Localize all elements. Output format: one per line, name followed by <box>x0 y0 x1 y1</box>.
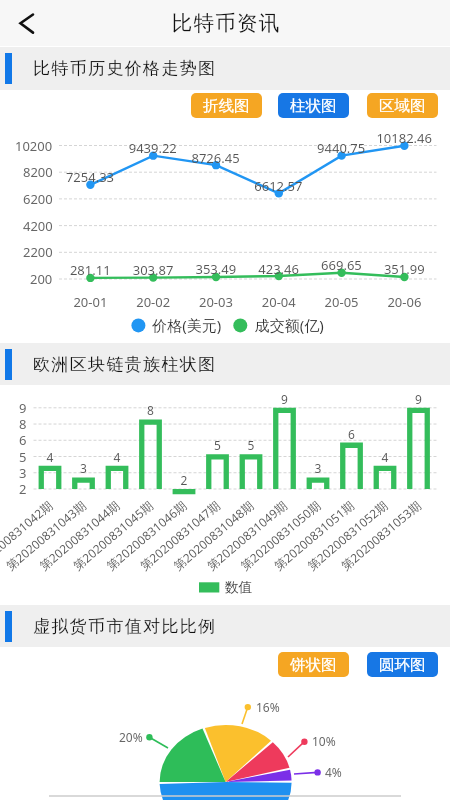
staticText: 区域图 <box>379 96 426 116</box>
staticText: 比特币资讯 <box>171 10 280 36</box>
button[interactable]: 区域图 <box>367 93 438 118</box>
staticText: 虚拟货币市值对比比例 <box>33 616 217 637</box>
staticText: 欧洲区块链贵族柱状图 <box>33 354 217 375</box>
button[interactable]: 柱状图 <box>278 93 349 118</box>
button[interactable]: 饼状图 <box>278 652 349 677</box>
staticText: 圆环图 <box>379 655 426 675</box>
staticText: 比特币历史价格走势图 <box>33 58 217 79</box>
button[interactable]: Back <box>0 0 46 46</box>
staticText: 柱状图 <box>290 96 337 116</box>
button[interactable]: 圆环图 <box>367 652 438 677</box>
staticText: 折线图 <box>203 96 250 116</box>
button[interactable]: 折线图 <box>191 93 262 118</box>
staticText: 饼状图 <box>290 655 337 675</box>
